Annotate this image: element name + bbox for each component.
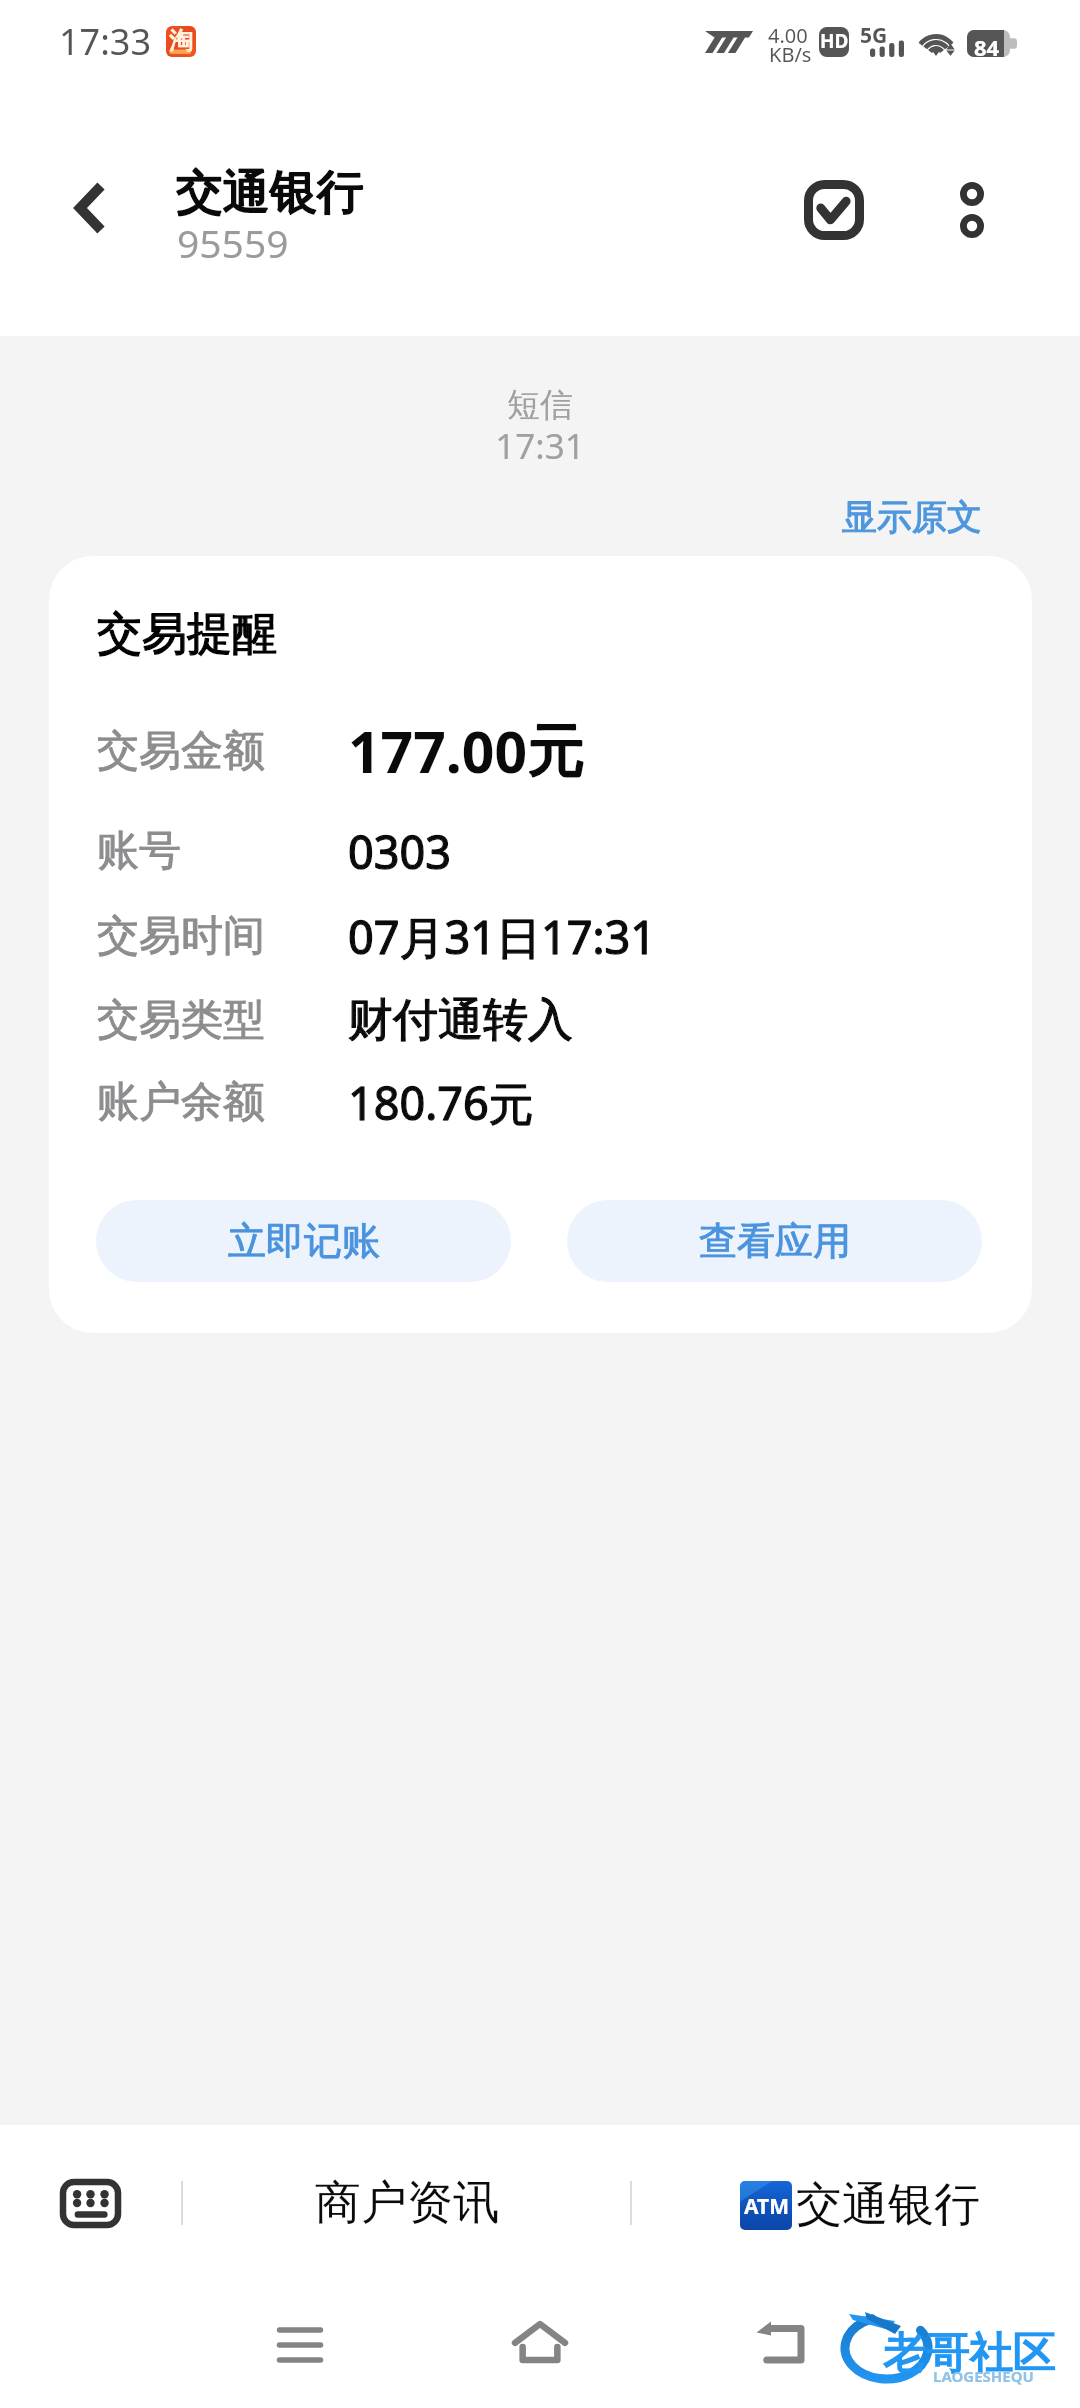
button[interactable]: Select messages bbox=[779, 155, 889, 265]
button[interactable]: Home bbox=[480, 2285, 600, 2405]
button[interactable]: Keyboard bbox=[0, 2125, 181, 2281]
staticText: 财付通转入 bbox=[348, 992, 573, 1049]
staticText: 元 bbox=[528, 715, 585, 787]
staticText: 交易类型 bbox=[97, 994, 265, 1047]
staticText: 交通银行 bbox=[176, 163, 364, 222]
button[interactable]: ATM bbox=[632, 2125, 1080, 2281]
staticText: 0303 bbox=[348, 821, 451, 882]
staticText: 财付通转入 bbox=[348, 992, 573, 1049]
staticText: 显示原文 bbox=[842, 495, 982, 539]
staticText: 180.76元 bbox=[348, 1072, 534, 1133]
button[interactable]: 查看应用 bbox=[567, 1200, 982, 1282]
staticText: 交易时间 bbox=[97, 910, 265, 963]
staticText: 0303 bbox=[348, 821, 451, 882]
staticText: 立即记账 bbox=[228, 1217, 380, 1265]
staticText: 17:31 bbox=[0, 422, 1080, 470]
staticText: 账号 bbox=[97, 825, 181, 878]
button[interactable]: Recent apps bbox=[240, 2285, 360, 2405]
staticText: 180.76元 bbox=[348, 1072, 534, 1133]
staticText: 老哥社区 bbox=[883, 2327, 1055, 2381]
staticText: 元 bbox=[528, 715, 585, 787]
staticText: HD bbox=[820, 28, 849, 54]
staticText: 交易金额 bbox=[97, 725, 265, 778]
staticText: 立即记账 bbox=[228, 1217, 380, 1265]
staticText: 95559 bbox=[177, 216, 289, 269]
staticText: 查看应用 bbox=[699, 1217, 851, 1265]
staticText: 4.00 bbox=[768, 22, 808, 49]
staticText: 交通银行 bbox=[176, 163, 364, 222]
button[interactable]: 显示原文 bbox=[828, 495, 996, 547]
staticText: 淘 bbox=[169, 26, 193, 56]
staticText: 交易提醒 bbox=[97, 606, 277, 663]
staticText: 查看应用 bbox=[699, 1217, 851, 1265]
staticText: ATM bbox=[744, 2192, 789, 2221]
staticText: KB/s bbox=[769, 41, 812, 68]
button[interactable]: More options bbox=[917, 155, 1027, 265]
staticText: 17:33 bbox=[59, 17, 152, 66]
button[interactable]: Back bbox=[720, 2285, 840, 2405]
staticText: 短信 bbox=[0, 384, 1080, 426]
staticText: 账户余额 bbox=[97, 1076, 265, 1129]
staticText: 账号 bbox=[97, 825, 181, 878]
staticText: 商户资讯 bbox=[315, 2174, 499, 2232]
staticText: 交易类型 bbox=[97, 994, 265, 1047]
staticText: 84 bbox=[974, 32, 1000, 59]
staticText: 交易金额 bbox=[97, 725, 265, 778]
staticText: 显示原文 bbox=[842, 495, 982, 539]
staticText: 07月31日17:31 bbox=[348, 906, 656, 967]
button[interactable]: 商户资讯 bbox=[183, 2125, 630, 2281]
button[interactable]: 交易提醒 bbox=[49, 556, 1032, 1333]
staticText: LAOGESHEQU bbox=[933, 2366, 1034, 2386]
staticText: 账户余额 bbox=[97, 1076, 265, 1129]
staticText: 交通银行 bbox=[796, 2176, 980, 2234]
staticText: 交易提醒 bbox=[97, 606, 277, 663]
staticText: 交易时间 bbox=[97, 910, 265, 963]
staticText: 5G bbox=[860, 21, 888, 50]
button[interactable]: 立即记账 bbox=[96, 1200, 511, 1282]
staticText: 177.00 bbox=[348, 712, 528, 790]
staticText: 07月31日17:31 bbox=[348, 906, 656, 967]
button[interactable]: Back bbox=[35, 153, 145, 263]
